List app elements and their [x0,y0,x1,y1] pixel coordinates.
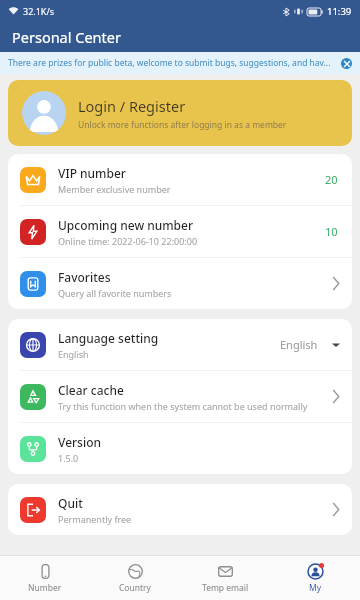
staticText: Personal Center [12,27,121,47]
staticText: Clear cache [58,382,124,398]
button[interactable]: Upcoming new number [8,206,352,257]
button[interactable]: Language setting [8,319,352,370]
staticText: My [309,582,322,594]
staticText: Login / Register [78,96,186,116]
staticText: 11:39 [327,5,352,18]
button[interactable]: Favorites [8,258,352,309]
button[interactable]: Clear cache [8,371,352,422]
staticText: Member exclusive number [58,183,171,195]
staticText: 10 [325,224,338,239]
staticText: There are prizes for public beta, welcom… [8,57,337,69]
staticText: Unlock more functions after logging in a… [78,119,287,131]
staticText: Number [28,582,62,594]
button[interactable]: Login / Register [8,80,352,146]
button[interactable]: Version [8,423,352,474]
staticText: Upcoming new number [58,217,194,233]
staticText: Query all favorite numbers [58,287,172,299]
staticText: English [280,337,318,352]
button[interactable]: Quit [8,484,352,535]
staticText: 1.5.0 [58,452,79,464]
staticText: Online time: 2022-06-10 22:00:00 [58,235,198,247]
button[interactable]: Country [90,560,180,597]
staticText: Country [119,582,151,594]
button[interactable]: VIP number [8,154,352,205]
staticText: Permanently free [58,513,132,525]
staticText: Version [58,434,102,450]
staticText: 32.1K/s [23,5,55,17]
staticText: Temp email [202,582,249,594]
staticText: VIP number [58,165,126,181]
button[interactable]: Close banner [341,58,352,69]
staticText: Try this function when the system cannot… [58,400,308,412]
staticText: English [58,348,89,360]
button[interactable]: Number [0,560,90,597]
staticText: Language setting [58,330,159,346]
button[interactable]: My [270,560,360,597]
staticText: Quit [58,495,83,511]
button[interactable]: Temp email [180,560,270,597]
staticText: Favorites [58,269,111,285]
staticText: 20 [325,172,338,187]
button[interactable]: There are prizes for public beta, welcom… [0,52,360,74]
